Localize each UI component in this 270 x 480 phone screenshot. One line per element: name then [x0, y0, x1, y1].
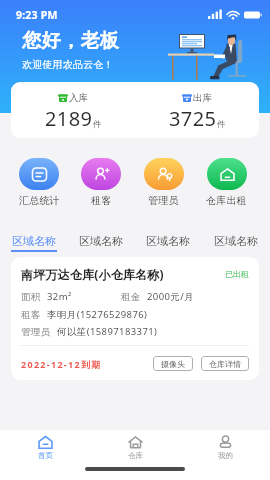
staticText: 欢迎使用农品云仓！: [22, 58, 114, 71]
staticText: 仓库: [128, 451, 143, 460]
button[interactable]: 入库: [11, 82, 135, 138]
button[interactable]: 仓库详情: [201, 356, 249, 371]
staticText: 9:23 PM: [16, 8, 58, 22]
staticText: 汇总统计: [19, 194, 60, 207]
button[interactable]: 区域名称: [67, 234, 134, 252]
staticText: 2000元/月: [147, 290, 195, 303]
staticText: 区域名称: [12, 234, 56, 248]
staticText: 管理员: [21, 326, 51, 338]
staticText: 您好，老板: [22, 29, 119, 53]
button[interactable]: 汇总统计: [8, 158, 70, 207]
button[interactable]: 仓库: [90, 430, 180, 465]
staticText: 入库: [69, 92, 88, 104]
staticText: 首页: [38, 451, 53, 460]
staticText: 南坪万达仓库(小仓库名称): [21, 266, 164, 282]
staticText: 仓库详情: [209, 359, 241, 369]
staticText: 我的: [218, 451, 233, 460]
button[interactable]: 区域名称: [0, 234, 67, 252]
staticText: 区域名称: [146, 234, 190, 248]
staticText: 件: [217, 119, 226, 130]
staticText: 已出租: [225, 269, 249, 279]
staticText: 区域名称: [214, 234, 258, 248]
button[interactable]: 我的: [180, 430, 270, 465]
staticText: 何以笙(15897183371): [57, 325, 158, 338]
staticText: 李明月(15276529876): [47, 308, 148, 321]
staticText: 租金: [121, 291, 141, 303]
staticText: 区域名称: [79, 234, 123, 248]
staticText: 3725: [169, 105, 217, 132]
button[interactable]: 出库: [135, 82, 259, 138]
staticText: 32m²: [47, 290, 72, 303]
button[interactable]: 南坪万达仓库(小仓库名称): [11, 257, 259, 380]
staticText: 2022-12-12到期: [21, 358, 102, 370]
button[interactable]: 摄像头: [153, 356, 193, 371]
staticText: 2189: [45, 105, 93, 132]
staticText: 摄像头: [161, 359, 185, 369]
button[interactable]: 区域名称: [134, 234, 202, 252]
staticText: 出库: [193, 92, 212, 104]
staticText: 仓库出租: [206, 194, 247, 207]
button[interactable]: 管理员: [132, 158, 195, 207]
button[interactable]: 租客: [70, 158, 132, 207]
staticText: 租客: [21, 309, 41, 321]
button[interactable]: 首页: [0, 430, 90, 465]
staticText: 面积: [21, 291, 41, 303]
button[interactable]: 区域名称: [202, 234, 270, 252]
staticText: 管理员: [148, 194, 179, 207]
button[interactable]: 仓库出租: [195, 158, 258, 207]
staticText: 件: [93, 119, 102, 130]
staticText: 租客: [91, 194, 112, 207]
